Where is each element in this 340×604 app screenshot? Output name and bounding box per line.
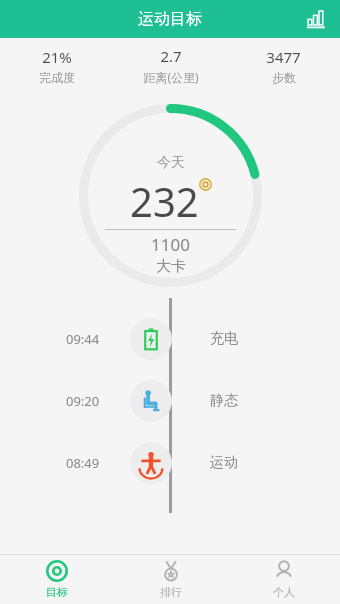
staticText: 目标 xyxy=(46,585,68,599)
staticText: 运动目标 xyxy=(138,9,202,29)
staticText: 08:49 xyxy=(66,454,130,472)
staticText: 个人 xyxy=(273,585,295,599)
staticText: 21% xyxy=(42,47,72,67)
staticText: 充电 xyxy=(210,330,340,348)
staticText: 距离(公里) xyxy=(143,69,199,85)
button[interactable]: 09:44 xyxy=(0,318,340,360)
button[interactable]: 3477 xyxy=(227,47,340,85)
staticText: 09:44 xyxy=(66,330,130,348)
staticText: 大卡 xyxy=(156,257,186,276)
button[interactable]: 2.7 xyxy=(114,46,227,85)
button[interactable]: 目标 xyxy=(0,555,114,604)
staticText: 今天 xyxy=(157,154,185,172)
staticText: 运动 xyxy=(210,454,340,472)
staticText: 步数 xyxy=(272,70,296,85)
button[interactable]: 21% xyxy=(0,47,114,85)
button[interactable]: 个人 xyxy=(227,555,340,604)
staticText: 静态 xyxy=(210,392,340,410)
staticText: 232 xyxy=(130,174,199,228)
staticText: 2.7 xyxy=(160,46,182,66)
staticText: 3477 xyxy=(266,47,301,67)
staticText: 09:20 xyxy=(66,392,130,410)
staticText: 排行 xyxy=(160,585,182,599)
button[interactable]: 08:49 xyxy=(0,442,340,484)
button[interactable]: 09:20 xyxy=(0,380,340,422)
button[interactable]: 排行 xyxy=(114,555,227,604)
staticText: 完成度 xyxy=(39,70,75,85)
button[interactable]: Statistics xyxy=(300,3,332,35)
staticText: 1100 xyxy=(151,233,190,256)
